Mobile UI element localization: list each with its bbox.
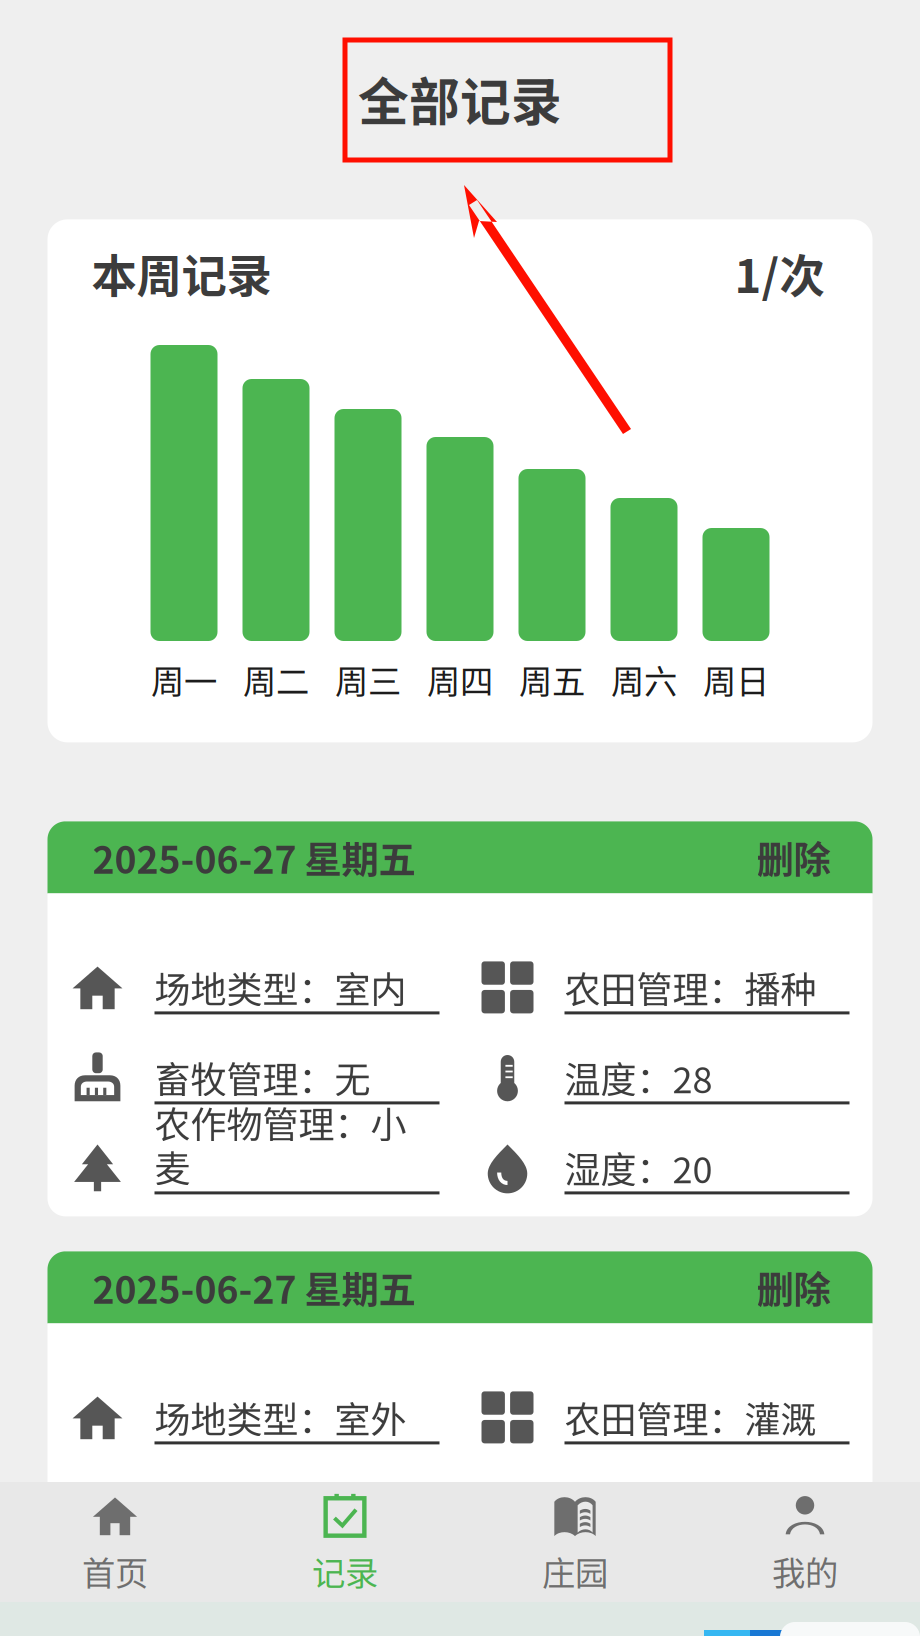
- staticText: 场地类型：室内: [154, 961, 406, 1013]
- staticText: 农作物管理：玉米: [154, 1571, 442, 1623]
- button[interactable]: 删除: [756, 1260, 830, 1314]
- staticText: 周三: [335, 655, 401, 703]
- staticText: 湿度：40: [564, 1571, 712, 1623]
- staticText: 麦: [154, 1140, 190, 1192]
- staticText: 农田管理：播种: [564, 961, 816, 1013]
- staticText: 2025-06-27 星期五: [92, 1260, 415, 1314]
- staticText: 温度：30: [564, 1481, 712, 1533]
- staticText: 首页: [82, 1547, 148, 1595]
- staticText: 删除: [756, 1260, 830, 1314]
- staticText: 周五: [519, 655, 585, 703]
- staticText: 周二: [243, 655, 309, 703]
- staticText: 周日: [703, 655, 769, 703]
- staticText: 1/次: [734, 240, 824, 306]
- button[interactable]: 删除: [756, 830, 830, 884]
- staticText: 2025-06-27 星期五: [92, 830, 415, 884]
- staticText: 本周记录: [91, 240, 271, 306]
- staticText: 删除: [756, 830, 830, 884]
- button[interactable]: 首页: [0, 1479, 230, 1605]
- button[interactable]: 我的: [690, 1479, 920, 1605]
- staticText: 周一: [151, 655, 217, 703]
- staticText: 畜牧管理：无: [154, 1481, 370, 1533]
- staticText: 场地类型：室外: [154, 1391, 406, 1443]
- staticText: 全部记录: [358, 62, 562, 135]
- button[interactable]: 记录: [230, 1479, 460, 1605]
- staticText: 庄园: [542, 1547, 608, 1595]
- staticText: 湿度：20: [564, 1141, 712, 1193]
- button[interactable]: 庄园: [460, 1479, 690, 1605]
- staticText: 畜牧管理：无: [154, 1051, 370, 1103]
- staticText: 周四: [427, 655, 493, 703]
- staticText: 农田管理：灌溉: [564, 1391, 816, 1443]
- staticText: 农作物管理：小: [154, 1096, 406, 1148]
- staticText: 记录: [312, 1547, 378, 1595]
- staticText: 周六: [611, 655, 677, 703]
- staticText: 我的: [772, 1547, 838, 1595]
- staticText: 温度：28: [564, 1051, 712, 1103]
